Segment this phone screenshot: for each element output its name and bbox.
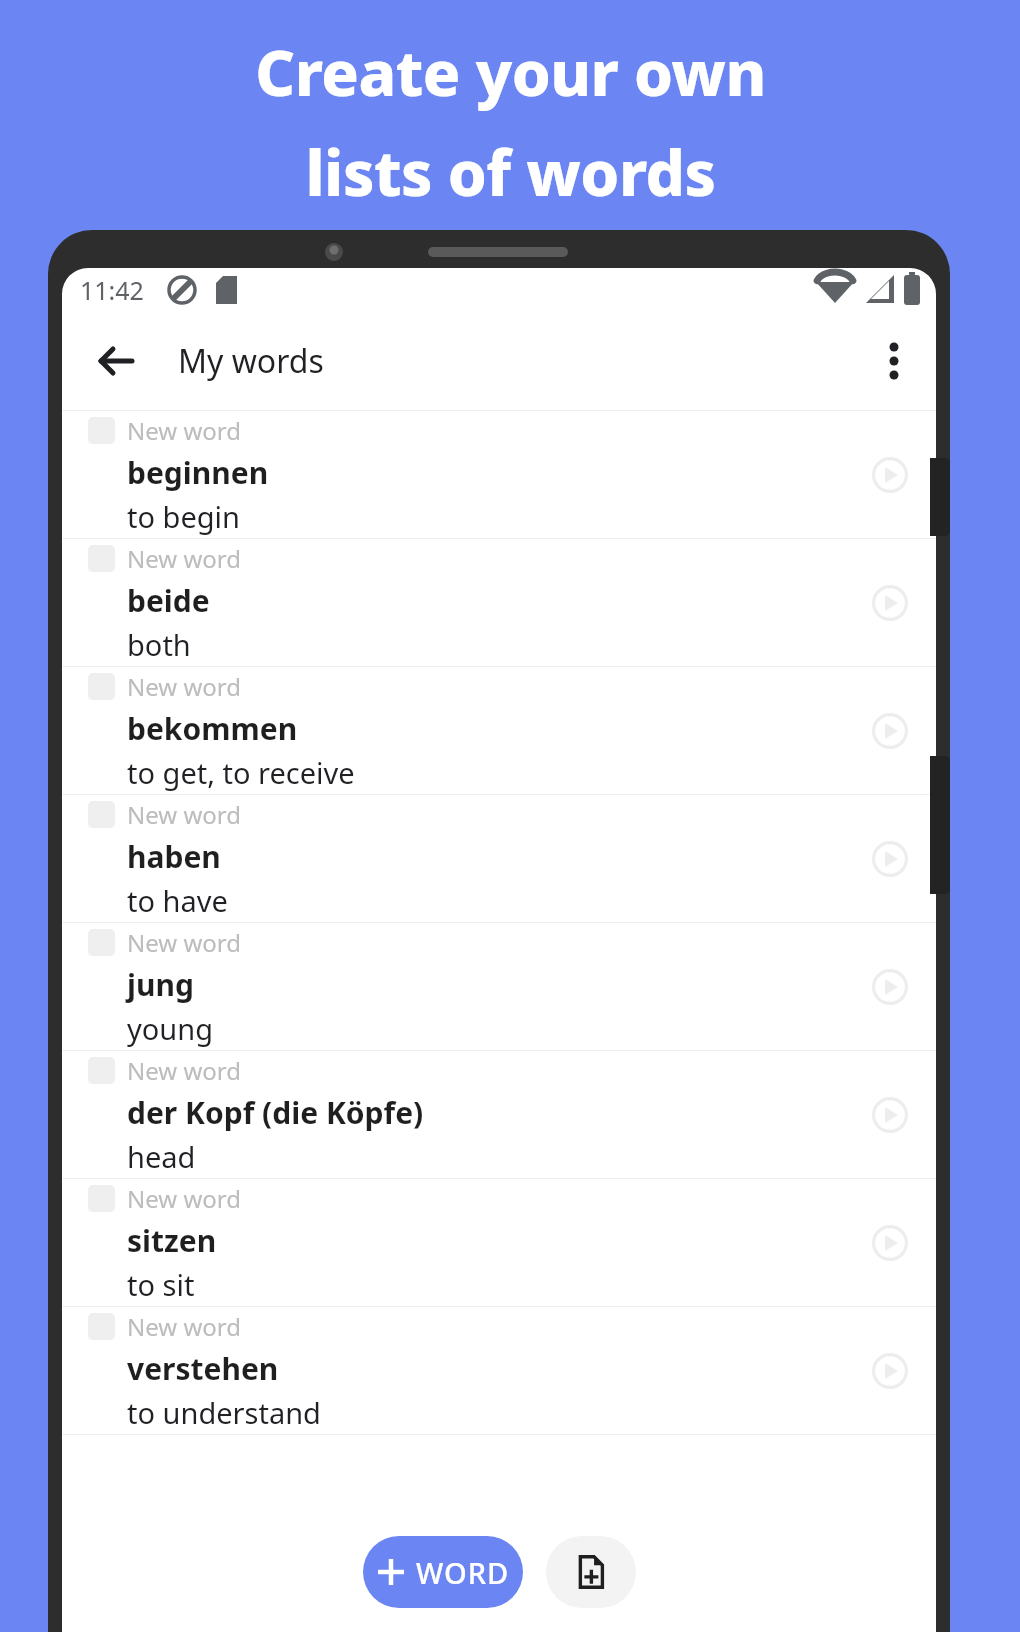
staticText: New word xyxy=(127,1310,241,1343)
staticText: New word xyxy=(127,926,241,959)
button[interactable]: Select word xyxy=(62,667,936,794)
button[interactable]: Select word xyxy=(62,539,936,666)
button[interactable]: Play pronunciation xyxy=(862,575,918,631)
staticText: New word xyxy=(127,1182,241,1215)
staticText: young xyxy=(127,1009,214,1048)
button[interactable]: Select word xyxy=(62,1307,936,1434)
staticText: beginnen xyxy=(127,452,269,493)
button[interactable]: Back xyxy=(88,333,144,389)
button[interactable]: Play pronunciation xyxy=(862,447,918,503)
button[interactable]: Select word xyxy=(62,923,936,1050)
staticText: My words xyxy=(178,339,324,383)
button[interactable]: Select word xyxy=(62,1051,936,1178)
button[interactable]: Play pronunciation xyxy=(862,703,918,759)
staticText: New word xyxy=(127,798,241,831)
staticText: haben xyxy=(127,836,221,877)
staticText: sitzen xyxy=(127,1220,217,1261)
staticText: New word xyxy=(127,542,241,575)
button[interactable]: WORD xyxy=(363,1536,523,1608)
staticText: verstehen xyxy=(127,1348,279,1389)
button[interactable]: Select word xyxy=(62,1179,936,1306)
staticText: to get, to receive xyxy=(127,753,355,792)
button[interactable]: More options xyxy=(866,333,922,389)
button[interactable]: Play pronunciation xyxy=(862,831,918,887)
button[interactable]: Play pronunciation xyxy=(862,1215,918,1271)
button[interactable]: Import word list from file xyxy=(546,1536,636,1608)
staticText: Create your own xyxy=(255,30,766,114)
staticText: lists of words xyxy=(305,130,716,214)
button[interactable]: Play pronunciation xyxy=(862,1343,918,1399)
staticText: New word xyxy=(127,1054,241,1087)
button[interactable]: Select word xyxy=(62,795,936,922)
button[interactable]: Play pronunciation xyxy=(862,1087,918,1143)
staticText: to begin xyxy=(127,497,240,536)
staticText: New word xyxy=(127,414,241,447)
staticText: to have xyxy=(127,881,228,920)
staticText: jung xyxy=(127,964,194,1005)
staticText: beide xyxy=(127,580,210,621)
button[interactable]: Play pronunciation xyxy=(862,959,918,1015)
staticText: head xyxy=(127,1137,196,1176)
staticText: bekommen xyxy=(127,708,298,749)
staticText: to understand xyxy=(127,1393,321,1432)
button[interactable]: Select word xyxy=(62,411,936,538)
staticText: both xyxy=(127,625,191,664)
staticText: New word xyxy=(127,670,241,703)
staticText: 11:42 xyxy=(80,273,144,307)
staticText: der Kopf (die Köpfe) xyxy=(127,1092,424,1133)
staticText: WORD xyxy=(416,1553,510,1592)
staticText: to sit xyxy=(127,1265,195,1304)
